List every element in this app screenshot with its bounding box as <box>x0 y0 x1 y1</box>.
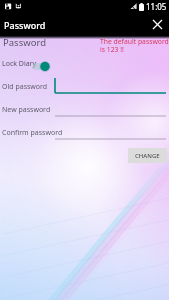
staticText: 11:05 <box>146 1 167 12</box>
button[interactable]: Close <box>146 13 169 36</box>
staticText: Password <box>3 36 46 49</box>
button[interactable]: CHANGE <box>128 148 167 163</box>
button[interactable]: Lock Diary <box>0 58 169 72</box>
staticText: The default password is 123 !! <box>100 37 169 54</box>
staticText: Old password <box>2 82 48 92</box>
staticText: CHANGE <box>135 152 160 160</box>
button[interactable]: New password <box>0 102 169 118</box>
staticText: Lock Diary <box>2 59 37 69</box>
staticText: New password <box>2 105 51 115</box>
staticText: Confirm password <box>2 128 63 138</box>
staticText: Password <box>4 19 46 31</box>
button[interactable]: Old password <box>0 79 169 95</box>
button[interactable]: Confirm password <box>0 125 169 141</box>
